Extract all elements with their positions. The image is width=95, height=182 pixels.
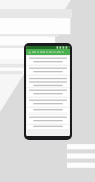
button[interactable] [27, 125, 69, 129]
button[interactable] [27, 56, 69, 65]
button[interactable]: Open navigation menu [26, 49, 70, 55]
button[interactable] [27, 108, 69, 114]
button[interactable] [27, 76, 69, 87]
button[interactable] [27, 98, 69, 107]
button[interactable] [27, 88, 69, 97]
button[interactable] [27, 66, 69, 75]
button[interactable] [27, 115, 69, 124]
